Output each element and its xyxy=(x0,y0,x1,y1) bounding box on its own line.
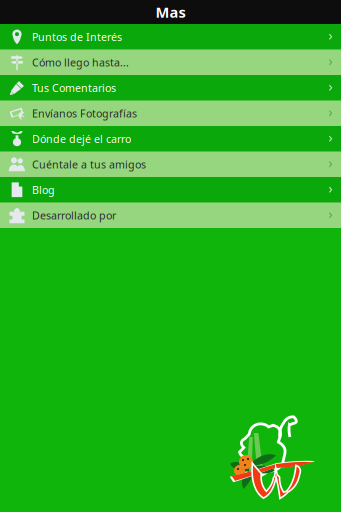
button[interactable]: Puntos de Interés xyxy=(0,24,341,49)
staticText: Tus Comentarios xyxy=(32,81,116,95)
button[interactable]: Dónde dejé el carro xyxy=(0,126,341,151)
button[interactable]: Tus Comentarios xyxy=(0,75,341,100)
staticText: Blog xyxy=(32,183,55,197)
button[interactable]: Cuéntale a tus amigos xyxy=(0,151,341,177)
staticText: Puntos de Interés xyxy=(32,30,122,44)
button[interactable]: Cómo llego hasta... xyxy=(0,49,341,75)
staticText: Cómo llego hasta... xyxy=(32,55,129,69)
staticText: Cuéntale a tus amigos xyxy=(32,157,146,171)
button[interactable]: Blog xyxy=(0,177,341,202)
button[interactable]: Desarrollado por xyxy=(0,202,341,228)
staticText: Envíanos Fotografías xyxy=(32,106,137,120)
staticText: Dónde dejé el carro xyxy=(32,132,131,146)
button[interactable]: Envíanos Fotografías xyxy=(0,100,341,126)
staticText: Mas xyxy=(155,2,185,22)
staticText: Desarrollado por xyxy=(32,208,116,222)
